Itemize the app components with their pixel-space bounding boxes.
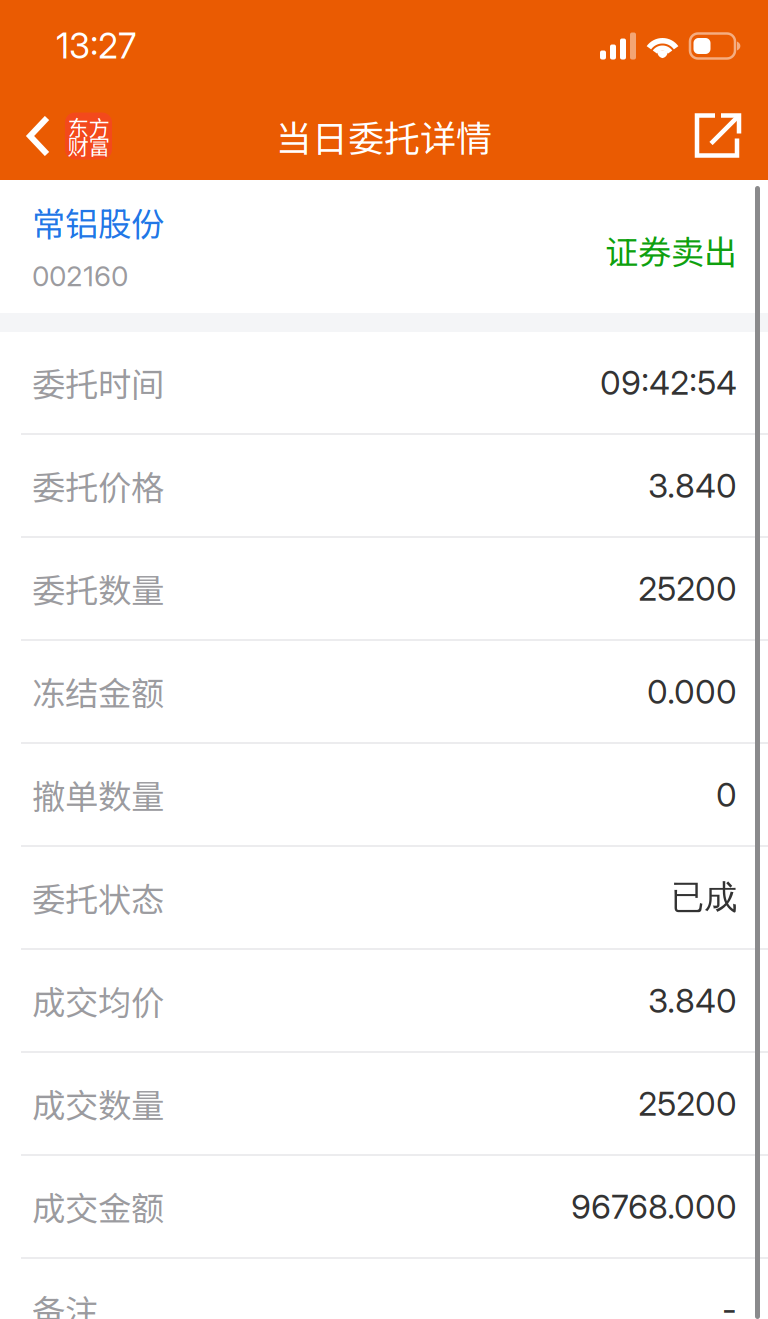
staticText: 已成: [671, 876, 737, 918]
button[interactable]: 冻结金额: [0, 641, 768, 742]
staticText: 常铝股份: [32, 198, 164, 246]
button[interactable]: 成交金额: [0, 1156, 768, 1257]
button[interactable]: 备注: [0, 1259, 768, 1319]
button[interactable]: Back: [0, 92, 126, 180]
button[interactable]: 成交数量: [0, 1053, 768, 1154]
staticText: 成交金额: [32, 1182, 164, 1231]
button[interactable]: 成交均价: [0, 950, 768, 1051]
button[interactable]: 撤单数量: [0, 744, 768, 845]
staticText: 东方: [67, 111, 109, 142]
staticText: 撤单数量: [32, 770, 164, 819]
staticText: 13:27: [56, 25, 136, 67]
staticText: 09:42:54: [600, 362, 737, 403]
staticText: 25200: [638, 1083, 737, 1124]
staticText: 0.000: [647, 671, 737, 712]
staticText: 成交数量: [32, 1079, 164, 1128]
staticText: 3.840: [648, 980, 737, 1021]
button[interactable]: 委托价格: [0, 435, 768, 536]
staticText: -: [722, 1289, 737, 1319]
staticText: 委托状态: [32, 873, 164, 922]
staticText: 冻结金额: [32, 667, 164, 716]
staticText: 96768.000: [571, 1186, 737, 1227]
staticText: 财富: [67, 130, 109, 161]
button[interactable]: 委托数量: [0, 538, 768, 639]
staticText: 成交均价: [32, 976, 164, 1025]
staticText: 证券卖出: [605, 226, 737, 274]
staticText: 0: [716, 774, 737, 815]
button[interactable]: 委托时间: [0, 332, 768, 433]
staticText: 委托价格: [32, 461, 164, 510]
staticText: 002160: [32, 259, 128, 293]
staticText: 25200: [638, 568, 737, 609]
staticText: 备注: [32, 1285, 98, 1319]
button[interactable]: 委托状态: [0, 847, 768, 948]
button[interactable]: 常铝股份: [0, 180, 768, 313]
button[interactable]: Share: [672, 92, 768, 180]
staticText: 委托时间: [32, 358, 164, 407]
staticText: 委托数量: [32, 564, 164, 613]
staticText: 3.840: [648, 465, 737, 506]
staticText: 当日委托详情: [276, 110, 492, 162]
